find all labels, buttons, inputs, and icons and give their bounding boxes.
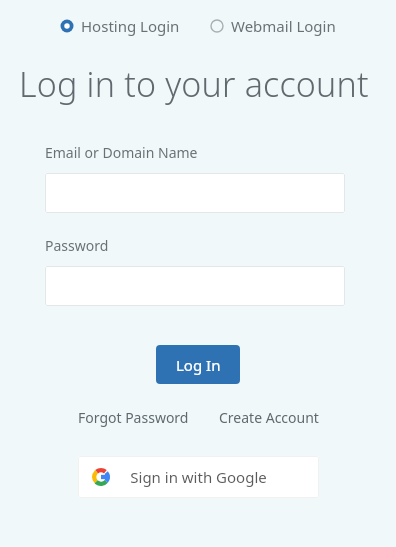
button[interactable]: Hosting Login bbox=[56, 13, 184, 39]
button[interactable]: Webmail Login bbox=[206, 13, 340, 39]
button[interactable]: Forgot Password bbox=[76, 405, 191, 430]
staticText: Hosting Login bbox=[81, 16, 180, 36]
button[interactable] bbox=[45, 173, 345, 213]
staticText: Email or Domain Name bbox=[45, 143, 198, 162]
staticText: Forgot Password bbox=[78, 408, 189, 427]
staticText: Log In bbox=[176, 355, 221, 375]
button[interactable] bbox=[45, 266, 345, 306]
staticText: Webmail Login bbox=[231, 16, 336, 36]
button[interactable]: Log In bbox=[156, 345, 240, 384]
staticText: Log in to your account bbox=[19, 61, 369, 107]
button[interactable]: Create Account bbox=[217, 405, 321, 430]
other: Google logo bbox=[92, 468, 110, 486]
button[interactable]: Google logo bbox=[78, 456, 319, 498]
staticText: Create Account bbox=[219, 408, 319, 427]
staticText: Sign in with Google bbox=[130, 467, 267, 487]
staticText: Password bbox=[45, 236, 109, 255]
